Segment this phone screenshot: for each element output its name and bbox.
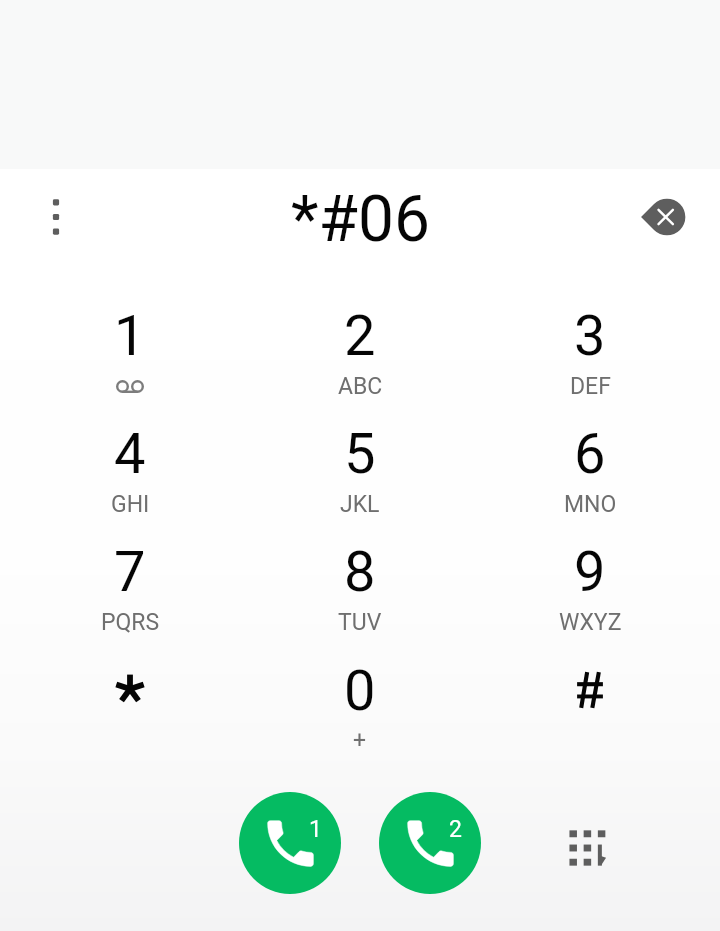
button[interactable]: 3 bbox=[475, 292, 705, 410]
button[interactable]: 5 bbox=[245, 410, 475, 528]
button[interactable]: 0 bbox=[245, 647, 475, 765]
button[interactable]: Hide keypad bbox=[548, 808, 628, 888]
staticText: ABC bbox=[338, 373, 383, 400]
staticText: WXYZ bbox=[559, 609, 622, 636]
staticText: MNO bbox=[564, 491, 617, 518]
button[interactable]: 6 bbox=[475, 410, 705, 528]
staticText: PQRS bbox=[101, 609, 160, 636]
staticText: 8 bbox=[344, 539, 376, 605]
button[interactable] bbox=[475, 647, 705, 765]
staticText: 2 bbox=[449, 816, 462, 843]
staticText: 9 bbox=[574, 539, 606, 605]
staticText: JKL bbox=[340, 491, 380, 518]
staticText: 1 bbox=[309, 816, 322, 843]
button[interactable]: Call with SIM 2 bbox=[379, 792, 481, 894]
staticText: 2 bbox=[344, 303, 376, 369]
staticText: 7 bbox=[114, 539, 146, 605]
button[interactable]: 7 bbox=[15, 528, 245, 646]
button[interactable]: 9 bbox=[475, 528, 705, 646]
staticText: *#06 bbox=[291, 182, 430, 257]
button[interactable]: 8 bbox=[245, 528, 475, 646]
staticText: TUV bbox=[338, 609, 382, 636]
button[interactable]: 4 bbox=[15, 410, 245, 528]
staticText: 5 bbox=[344, 421, 376, 487]
button[interactable] bbox=[15, 647, 245, 765]
staticText: GHI bbox=[111, 491, 150, 518]
staticText: 6 bbox=[574, 421, 606, 487]
button[interactable]: More options bbox=[14, 175, 98, 259]
staticText: 1 bbox=[114, 303, 146, 369]
button[interactable]: 2 bbox=[245, 292, 475, 410]
button[interactable]: Backspace bbox=[625, 175, 709, 259]
staticText: 4 bbox=[114, 421, 146, 487]
staticText: DEF bbox=[570, 373, 611, 400]
staticText: 0 bbox=[344, 658, 376, 724]
staticText: 3 bbox=[574, 303, 606, 369]
button[interactable]: 1 bbox=[15, 292, 245, 410]
staticText: + bbox=[353, 727, 367, 754]
button[interactable]: Call with SIM 1 bbox=[239, 792, 341, 894]
